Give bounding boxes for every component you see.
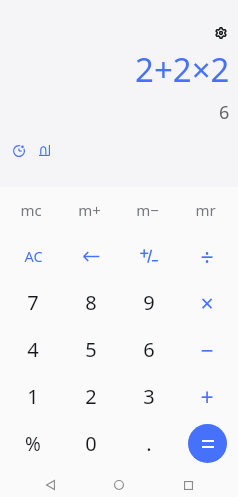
button[interactable]: m−	[118, 187, 176, 233]
staticText: 2+2×2	[135, 47, 230, 92]
staticText: mr	[195, 200, 216, 220]
button[interactable]: %	[4, 420, 62, 467]
staticText: 2	[85, 383, 97, 410]
button[interactable]: −	[178, 326, 236, 373]
staticText: 6	[143, 336, 155, 363]
staticText: 9	[143, 289, 155, 316]
button[interactable]: AC	[4, 233, 62, 279]
staticText: m−	[136, 200, 159, 220]
button[interactable]: 0	[62, 420, 120, 467]
staticText: 5	[85, 336, 97, 363]
button[interactable]: 2	[62, 373, 120, 420]
button[interactable]: mc	[2, 187, 60, 233]
staticText: −	[200, 334, 214, 365]
button[interactable]: History	[7, 139, 30, 162]
button[interactable]: ÷	[178, 233, 236, 279]
staticText: 0	[85, 430, 97, 457]
staticText: 8	[85, 289, 97, 316]
staticText: +	[200, 381, 214, 412]
button[interactable]: 4	[4, 326, 62, 373]
staticText: .	[146, 430, 152, 457]
button[interactable]: 9	[120, 279, 178, 326]
button[interactable]: Recents	[174, 471, 202, 497]
button[interactable]: 1	[4, 373, 62, 420]
other: Backspace	[83, 252, 100, 261]
staticText: 7	[27, 289, 39, 316]
button[interactable]: 5	[62, 326, 120, 373]
button[interactable]: m+	[60, 187, 118, 233]
staticText: ×	[200, 287, 214, 318]
staticText: %	[25, 431, 41, 457]
button[interactable]: Toggle sign	[120, 233, 178, 279]
button[interactable]: 8	[62, 279, 120, 326]
button[interactable]: 3	[120, 373, 178, 420]
button[interactable]: Back	[36, 471, 64, 497]
button[interactable]: 6	[120, 326, 178, 373]
staticText: m+	[78, 200, 101, 220]
button[interactable]: .	[120, 420, 178, 467]
button[interactable]: mr	[176, 187, 234, 233]
button[interactable]: Home	[105, 471, 133, 497]
button[interactable]: ×	[178, 279, 236, 326]
staticText: 6	[219, 100, 230, 125]
staticText: ÷	[200, 241, 214, 272]
staticText: AC	[24, 246, 43, 266]
button[interactable]: Backspace	[62, 233, 120, 279]
button[interactable]: Settings	[211, 23, 231, 43]
staticText: 3	[143, 383, 155, 410]
other: Toggle sign	[140, 249, 158, 263]
button[interactable]: Graph	[33, 139, 56, 162]
button[interactable]: 7	[4, 279, 62, 326]
staticText: 4	[27, 336, 39, 363]
button[interactable]: +	[178, 373, 236, 420]
button[interactable]: Equals	[188, 424, 227, 463]
staticText: mc	[20, 200, 42, 220]
staticText: 1	[27, 383, 39, 410]
